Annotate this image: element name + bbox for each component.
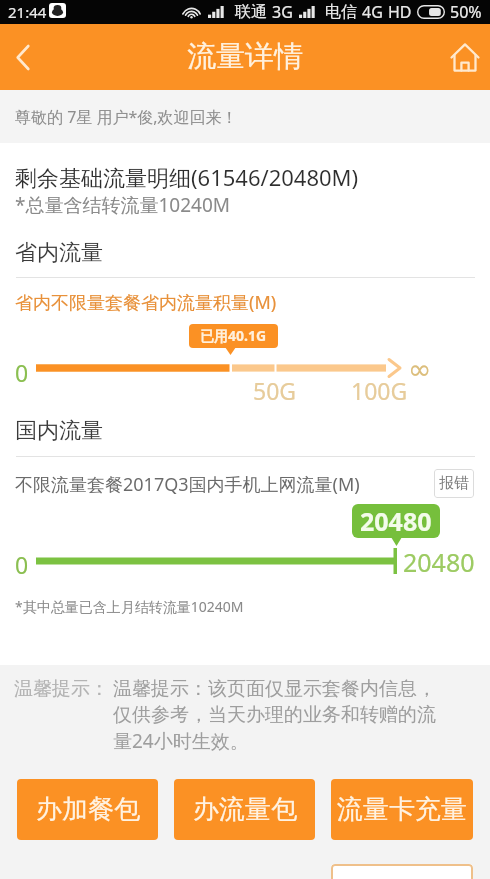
button[interactable]: Home xyxy=(442,34,488,80)
staticText: 3G xyxy=(272,1,293,23)
button[interactable]: 更多 xyxy=(331,864,473,879)
button[interactable]: 办加餐包 xyxy=(17,779,158,840)
button[interactable]: 流量卡充量 xyxy=(331,779,473,840)
staticText: 21:44 xyxy=(8,2,47,22)
staticText: 已用40.1G xyxy=(200,326,267,345)
staticText: 流量卡充量 xyxy=(337,793,467,826)
staticText: 不限流量套餐2017Q3国内手机上网流量(M) xyxy=(15,472,360,497)
staticText: 尊敬的 7星 用户*俊,欢迎回来！ xyxy=(15,106,238,128)
staticText: HD xyxy=(388,1,412,23)
staticText: 省内不限量套餐省内流量积量(M) xyxy=(15,290,277,315)
staticText: 剩余基础流量明细(61546/20480M) xyxy=(15,162,359,192)
staticText: *其中总量已含上月结转流量10240M xyxy=(15,597,244,616)
button[interactable]: 报错 xyxy=(434,469,474,498)
button[interactable]: 办流量包 xyxy=(174,779,315,840)
staticText: 办流量包 xyxy=(193,793,297,826)
staticText: 电信 xyxy=(325,2,357,22)
staticText: 报错 xyxy=(439,474,469,493)
staticText: 20480 xyxy=(403,545,475,579)
button[interactable]: Back xyxy=(2,24,44,90)
staticText: 20480 xyxy=(360,504,432,538)
staticText: 流量详情 xyxy=(187,38,303,75)
staticText: ∞ xyxy=(408,353,432,386)
staticText: 办加餐包 xyxy=(36,793,140,826)
staticText: 省内流量 xyxy=(15,239,103,267)
staticText: 温馨提示：该页面仅显示套餐内信息，仅供参考，当天办理的业务和转赠的流量24小时生… xyxy=(113,677,447,754)
staticText: 50% xyxy=(450,1,482,23)
staticText: *总量含结转流量10240M xyxy=(15,192,231,218)
staticText: 100G xyxy=(351,375,408,406)
staticText: 联通 xyxy=(235,2,267,22)
staticText: 0 xyxy=(15,357,29,388)
staticText: 温馨提示： xyxy=(14,677,109,701)
staticText: 国内流量 xyxy=(15,417,103,445)
staticText: 50G xyxy=(253,375,297,406)
staticText: 4G xyxy=(362,1,383,23)
staticText: 0 xyxy=(15,549,29,580)
